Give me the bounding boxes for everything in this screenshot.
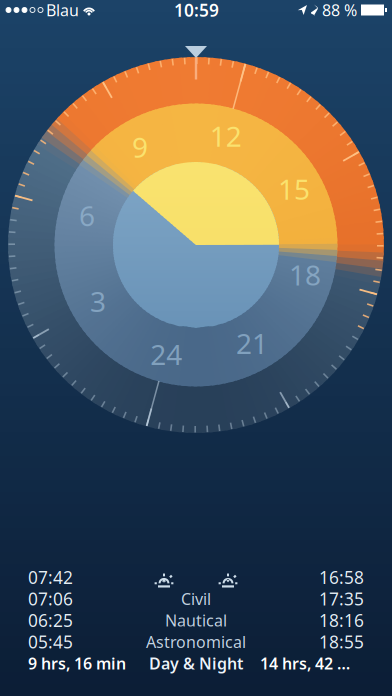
- staticText: 07:06: [28, 587, 73, 610]
- staticText: 14 hrs, 42 min: [260, 653, 364, 674]
- staticText: 18:16: [319, 609, 364, 632]
- staticText: 10:59: [174, 0, 219, 21]
- staticText: Civil: [181, 588, 211, 609]
- staticText: 18: [289, 256, 321, 293]
- staticText: 21: [236, 324, 268, 362]
- staticText: 07:42: [28, 566, 73, 589]
- staticText: 88 %: [322, 0, 357, 21]
- staticText: 15: [278, 170, 310, 207]
- staticText: 9 hrs, 16 min: [28, 653, 126, 674]
- staticText: 05:45: [28, 630, 73, 653]
- staticText: Astronomical: [146, 631, 246, 652]
- staticText: 6: [79, 197, 95, 234]
- staticText: 18:55: [319, 630, 364, 653]
- staticText: 12: [210, 117, 242, 155]
- staticText: 17:35: [319, 587, 364, 610]
- staticText: 24: [150, 335, 182, 373]
- staticText: Day & Night: [149, 653, 243, 674]
- staticText: Nautical: [165, 610, 227, 631]
- staticText: 3: [90, 282, 106, 320]
- staticText: 06:25: [28, 609, 73, 632]
- staticText: 9: [132, 128, 148, 165]
- staticText: Blau: [46, 0, 79, 21]
- staticText: 16:58: [319, 566, 364, 589]
